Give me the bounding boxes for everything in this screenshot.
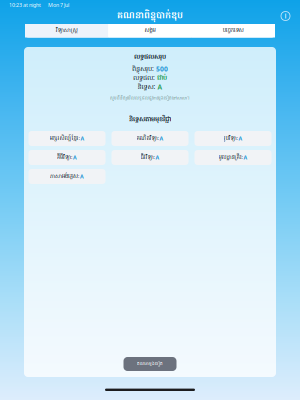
staticText: A [80,173,84,180]
staticText: មូលដ្ឋានគ្រឹះ: [218,153,243,161]
staticText: 10:23 at night [9,1,41,9]
staticText: លទ្ធផលសរុប [134,52,166,62]
staticText: 500 [156,65,168,73]
staticText: គណនាពិន្ទុបាក់ឌុប [117,9,183,23]
button[interactable]: សង្គម [108,24,192,37]
staticText: A [73,154,77,161]
staticText: សង្គម [144,27,155,34]
staticText: គីមីវិទ្យា: [57,153,73,161]
button[interactable]: បច្ចេកទេស [192,24,275,37]
staticText: i [284,12,286,20]
staticText: Mon 7 Jul [48,1,69,9]
staticText: A [243,154,247,161]
staticText: និទ្ទេសតាមមុខវិជ្ជា [129,115,171,124]
staticText: សូមពិនិត្យមើលលទ្ធផលផ្លូវការម្តងទៀតនៅសាលា… [110,96,190,101]
button[interactable]: អក្សរសិល្ប៍ខ្មែរ: [28,131,105,146]
staticText: A [155,154,159,161]
staticText: គណិតវិទ្យា: [136,134,159,142]
staticText: អក្សរសិល្ប៍ខ្មែរ: [49,134,80,142]
button[interactable]: ភាសាអង់គ្លេស: [28,169,105,184]
staticText: និទ្ទេស: [137,82,157,92]
button[interactable]: គណិតវិទ្យា: [111,131,188,146]
staticText: រូបវិទ្យា: [223,134,238,142]
staticText: វិទ្យាសាស្ត្រ [56,27,78,34]
staticText: បច្ចេកទេស [223,27,244,34]
staticText: ជីវវិទ្យា: [140,153,155,161]
staticText: A [80,135,84,142]
button[interactable]: ជីវវិទ្យា: [111,150,188,165]
staticText: លទ្ធផល: [133,73,157,83]
button[interactable]: រូបវិទ្យា: [194,131,271,146]
staticText: គណនាម្តងទៀត [137,361,163,367]
staticText: ពិន្ទុសរុប: [132,64,156,74]
staticText: A [157,83,162,91]
staticText: A [238,135,242,142]
button[interactable]: គណនាម្តងទៀត [123,357,176,371]
staticText: ភាសាអង់គ្លេស: [50,172,80,180]
staticText: ជាប់ [157,73,167,83]
staticText: A [159,135,163,142]
button[interactable]: វិទ្យាសាស្ត្រ [25,24,108,37]
button[interactable]: គីមីវិទ្យា: [28,150,105,165]
button[interactable]: មូលដ្ឋានគ្រឹះ: [194,150,271,165]
button[interactable]: Information [281,11,290,20]
